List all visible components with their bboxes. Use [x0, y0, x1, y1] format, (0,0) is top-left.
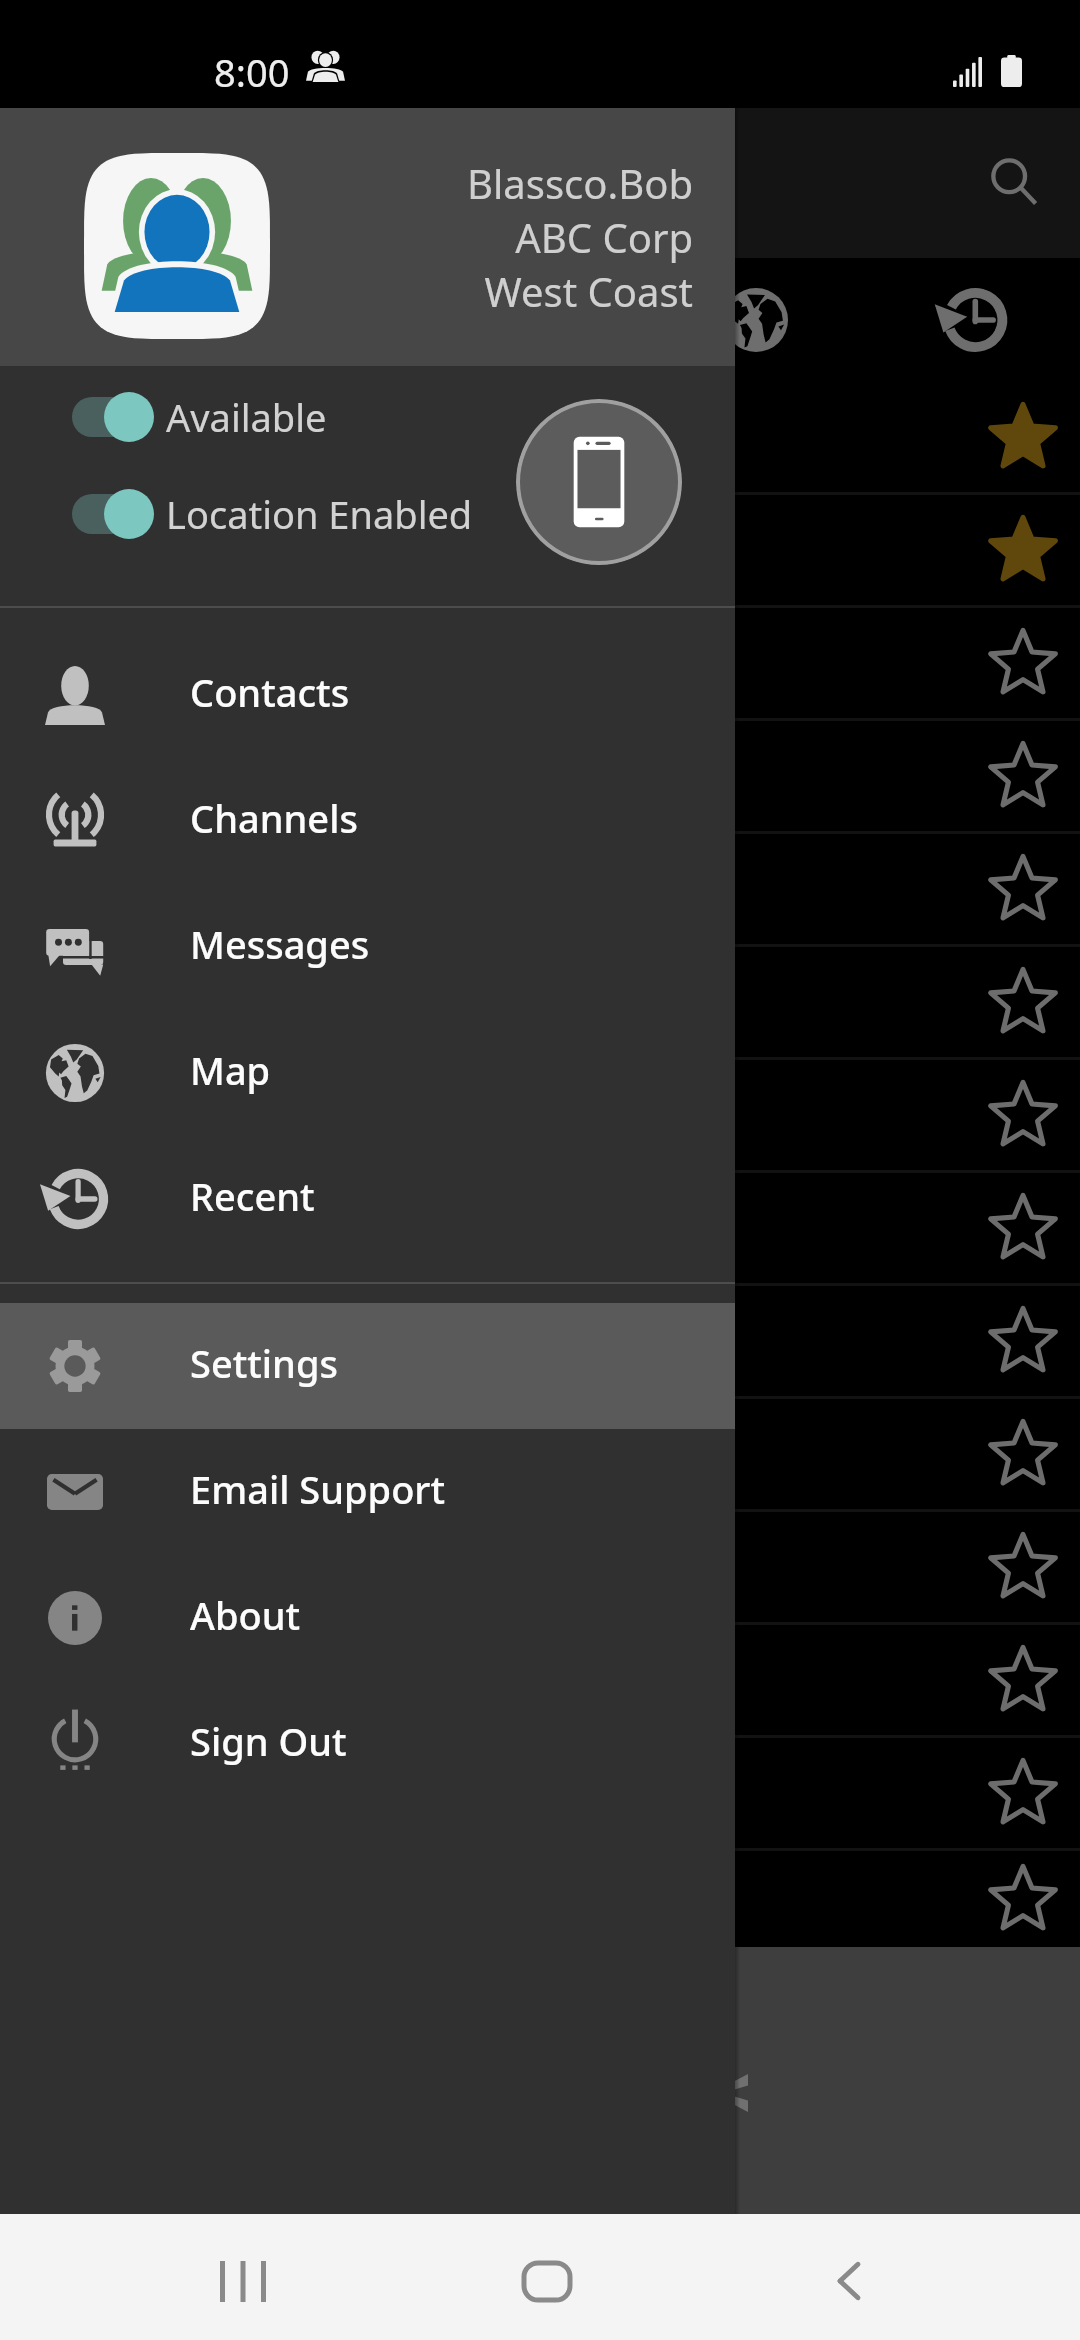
other: Favourite	[981, 395, 1065, 479]
other: Favourite	[981, 1525, 1065, 1609]
staticText: Channels	[190, 792, 358, 844]
staticText: Location Enabled	[166, 488, 473, 540]
other: Favourite	[981, 1638, 1065, 1722]
button[interactable]: Favourite	[0, 834, 1080, 944]
button[interactable]: Map	[0, 1010, 735, 1136]
button[interactable]: Favourite	[0, 1060, 1080, 1170]
button[interactable]: Channels	[0, 758, 735, 884]
other: Favourite	[981, 1073, 1065, 1157]
button[interactable]: Search	[966, 135, 1062, 231]
other: Favourite	[981, 1186, 1065, 1270]
button[interactable]: About	[0, 1555, 735, 1681]
button[interactable]: Favourite	[0, 1851, 1080, 1947]
staticText: ABC Corp	[515, 210, 693, 264]
staticText: About	[190, 1589, 301, 1641]
staticText: West Coast	[484, 264, 693, 318]
button[interactable]: Home	[467, 2214, 627, 2340]
button[interactable]: Location Enabled	[72, 478, 473, 550]
other: Favourite	[981, 1299, 1065, 1383]
button[interactable]: Favourite	[0, 382, 1080, 492]
button[interactable]: Sign Out	[0, 1681, 735, 1807]
button[interactable]: Contacts	[0, 632, 735, 758]
button[interactable]: Favourite	[0, 1286, 1080, 1396]
staticText: Available	[166, 391, 327, 443]
button[interactable]: Collapse	[712, 2074, 748, 2112]
other: Favourite	[981, 734, 1065, 818]
button[interactable]: Tab 1	[0, 258, 216, 382]
button[interactable]: Favourite	[0, 1399, 1080, 1509]
staticText: Sign Out	[190, 1715, 347, 1767]
button[interactable]: Recent apps	[163, 2214, 323, 2340]
other: Favourite	[981, 1751, 1065, 1835]
other: Favourite	[981, 847, 1065, 931]
button[interactable]: Favourite	[0, 1625, 1080, 1735]
other: Favourite	[981, 1412, 1065, 1496]
staticText: Map	[190, 1044, 271, 1096]
button[interactable]: Favourite	[0, 1173, 1080, 1283]
other: Favourite	[981, 621, 1065, 705]
button[interactable]: Profile picture	[84, 153, 270, 339]
button[interactable]: Device	[516, 399, 682, 565]
button[interactable]: Messages	[0, 884, 735, 1010]
button[interactable]: Favourite	[0, 721, 1080, 831]
button[interactable]: Email Support	[0, 1429, 735, 1555]
staticText: Contacts	[190, 666, 350, 718]
button[interactable]: Tab 3	[432, 258, 648, 382]
staticText: Messages	[190, 918, 370, 970]
button[interactable]: Favourite	[0, 1738, 1080, 1848]
staticText: Blassco.Bob	[467, 156, 693, 210]
button[interactable]: Tab 5	[864, 258, 1080, 382]
button[interactable]: Recent	[0, 1136, 735, 1262]
button[interactable]: Favourite	[0, 947, 1080, 1057]
button[interactable]: Tab 4	[648, 258, 864, 382]
other: Favourite	[981, 508, 1065, 592]
button[interactable]: Favourite	[0, 608, 1080, 718]
button[interactable]: Favourite	[0, 495, 1080, 605]
staticText: 8:00	[214, 46, 290, 98]
staticText: Settings	[190, 1337, 338, 1389]
other: Favourite	[981, 1857, 1065, 1941]
other: Favourite	[981, 960, 1065, 1044]
staticText: Email Support	[190, 1463, 445, 1515]
button[interactable]: Settings	[0, 1303, 735, 1429]
button[interactable]: Favourite	[0, 1512, 1080, 1622]
button[interactable]: Available	[72, 381, 327, 453]
staticText: Recent	[190, 1170, 315, 1222]
button[interactable]: Back	[769, 2214, 929, 2340]
button[interactable]: Tab 2	[216, 258, 432, 382]
